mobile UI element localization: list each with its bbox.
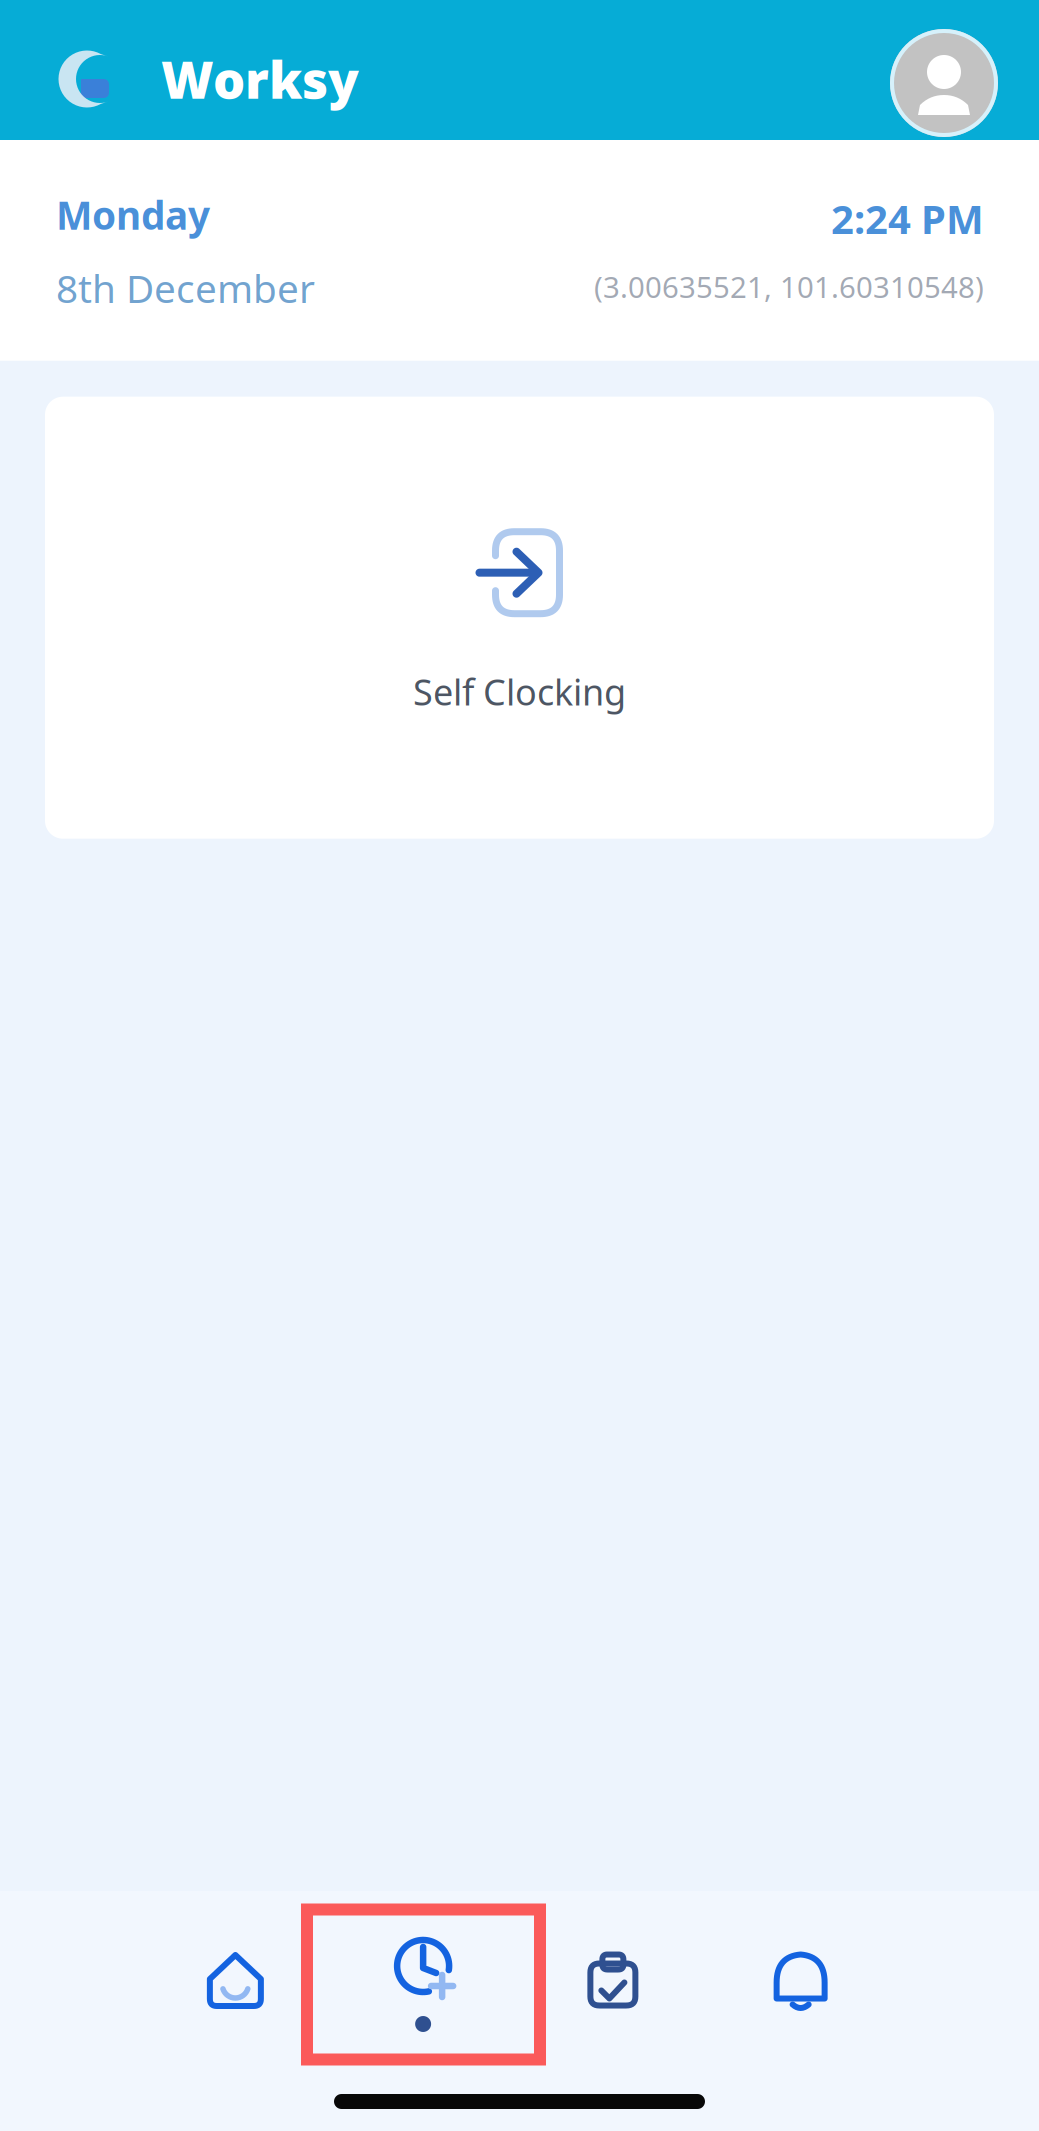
staticText: (3.00635521, 101.60310548) (594, 267, 984, 306)
button[interactable]: Notifications (706, 1897, 893, 2072)
button[interactable]: Tasks (519, 1897, 706, 2072)
staticText: Monday (56, 189, 210, 240)
staticText: 8th December (56, 262, 315, 314)
staticText: Worksy (161, 45, 359, 113)
button[interactable]: Self Clocking (45, 397, 994, 839)
staticText: Self Clocking (413, 668, 626, 715)
button[interactable]: Home (146, 1897, 333, 2072)
button[interactable]: Clock in (333, 1897, 520, 2072)
staticText: 2:24 PM (831, 192, 984, 245)
button[interactable]: Profile (890, 29, 998, 137)
